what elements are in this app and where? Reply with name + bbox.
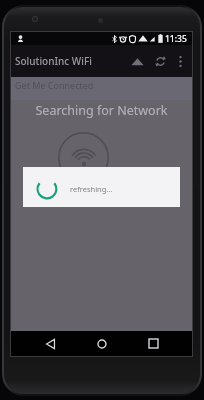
staticText: 11:35 (165, 33, 187, 45)
button[interactable]: WiFi (125, 49, 149, 73)
staticText: Get Me Connected (15, 79, 94, 91)
button[interactable]: Back (37, 331, 63, 356)
staticText: refreshing... (70, 184, 113, 194)
button[interactable]: Get Me Connected (11, 77, 192, 100)
button[interactable]: Recent apps (140, 331, 166, 356)
button[interactable]: Refresh (149, 50, 171, 72)
button[interactable]: Home (89, 331, 115, 356)
button[interactable]: More options (171, 52, 189, 70)
staticText: SolutionInc WiFi (15, 54, 92, 68)
staticText: Searching for Network (11, 102, 192, 119)
